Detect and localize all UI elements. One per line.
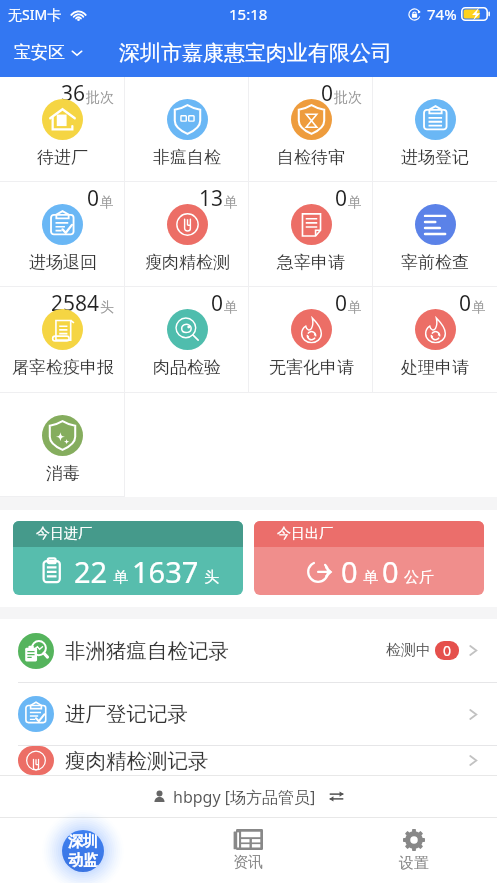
staticText: 急宰申请 (277, 252, 345, 273)
staticText: 单 (363, 568, 378, 587)
button[interactable]: 0 (0, 182, 125, 286)
button[interactable]: 2584 (0, 287, 125, 392)
button[interactable]: 0 (249, 77, 373, 181)
button[interactable]: 进场登记 (373, 77, 497, 181)
staticText: 0 (459, 289, 472, 318)
staticText: 22 (74, 552, 108, 591)
button[interactable]: 非洲猪瘟自检记录 (0, 619, 497, 682)
staticText: 36 (61, 79, 86, 108)
button[interactable]: hbpgy [场方品管员] (0, 776, 497, 817)
staticText: 15:18 (229, 4, 268, 24)
button[interactable]: 宝安区 (0, 36, 89, 69)
button[interactable]: 今日进厂 (13, 521, 243, 595)
staticText: 2584 (51, 289, 100, 318)
staticText: 肉品检验 (153, 357, 221, 378)
button[interactable]: 宰前检查 (373, 182, 497, 286)
staticText: 头 (100, 299, 114, 317)
staticText: 无SIM卡 (8, 5, 62, 24)
staticText: 设置 (399, 854, 429, 873)
staticText: 无害化申请 (269, 357, 354, 378)
staticText: hbpgy [场方品管员] (173, 786, 316, 808)
staticText: 非洲猪瘟自检记录 (65, 638, 229, 664)
staticText: 0 (335, 289, 348, 318)
staticText: 瘦肉精检测 (145, 252, 230, 273)
staticText: 进场退回 (29, 252, 97, 273)
staticText: 自检待审 (277, 147, 345, 168)
staticText: 单 (348, 299, 362, 317)
staticText: 瘦肉精检测记录 (65, 748, 209, 774)
button[interactable]: 非瘟自检 (125, 77, 249, 181)
staticText: 资讯 (233, 853, 263, 872)
staticText: 0 (382, 552, 399, 591)
staticText: 单 (224, 194, 238, 212)
staticText: 0 (211, 289, 224, 318)
staticText: 进厂登记记录 (65, 701, 188, 727)
staticText: 批次 (86, 89, 114, 107)
staticText: 深圳 (68, 832, 98, 851)
button[interactable]: 0 (125, 287, 249, 392)
button[interactable]: 36 (0, 77, 125, 181)
button[interactable]: 今日出厂 (254, 521, 484, 595)
staticText: 74% (427, 4, 457, 24)
staticText: 公斤 (404, 568, 434, 587)
button[interactable]: 0 (249, 287, 373, 392)
staticText: 头 (204, 568, 219, 587)
staticText: 非瘟自检 (153, 147, 221, 168)
button[interactable]: 资讯 (165, 818, 331, 883)
button[interactable]: 13 (125, 182, 249, 286)
staticText: 单 (348, 194, 362, 212)
staticText: 0 (341, 552, 358, 591)
staticText: 单 (224, 299, 238, 317)
staticText: 单 (100, 194, 114, 212)
staticText: 屠宰检疫申报 (12, 357, 114, 378)
staticText: 动监 (68, 851, 98, 870)
staticText: 处理申请 (401, 357, 469, 378)
staticText: 单 (113, 568, 128, 587)
staticText: 1637 (132, 552, 199, 591)
staticText: 宝安区 (14, 42, 65, 63)
staticText: 宰前检查 (401, 252, 469, 273)
staticText: 13 (199, 184, 224, 213)
staticText: 0 (321, 79, 334, 108)
staticText: 进场登记 (401, 147, 469, 168)
staticText: 待进厂 (37, 147, 88, 168)
staticText: 批次 (334, 89, 362, 107)
button[interactable]: 瘦肉精检测记录 (0, 746, 497, 775)
button[interactable]: 0 (373, 287, 497, 392)
button[interactable]: 深圳动监 首页 (0, 818, 165, 883)
button[interactable]: 0 (249, 182, 373, 286)
staticText: 检测中 (386, 641, 431, 660)
staticText: 今日出厂 (277, 525, 333, 543)
staticText: 消毒 (46, 463, 80, 484)
staticText: 深圳市嘉康惠宝肉业有限公司 (119, 40, 392, 66)
staticText: 0 (87, 184, 100, 213)
staticText: 0 (335, 184, 348, 213)
button[interactable]: 进厂登记记录 (0, 683, 497, 745)
staticText: 0 (443, 641, 452, 660)
staticText: 今日进厂 (36, 525, 92, 543)
button[interactable]: 设置 (331, 818, 497, 883)
staticText: 单 (472, 299, 486, 317)
button[interactable]: 消毒 (0, 393, 125, 497)
